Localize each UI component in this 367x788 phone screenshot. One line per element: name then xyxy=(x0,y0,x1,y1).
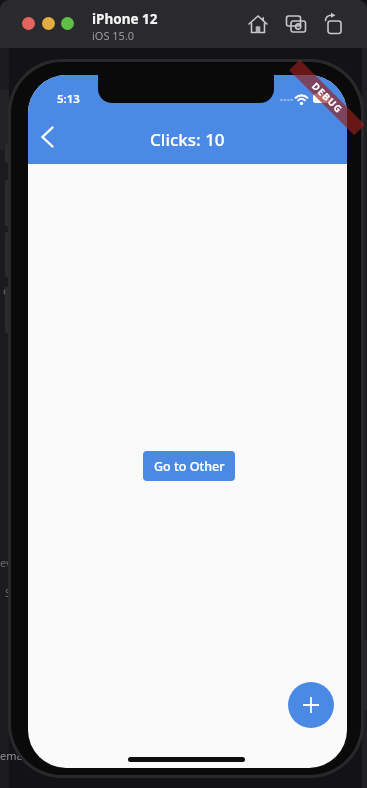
staticText: Clicks: 10 xyxy=(150,128,225,151)
staticText: iPhone 12 xyxy=(92,10,158,28)
button[interactable] xyxy=(285,14,307,36)
button[interactable] xyxy=(288,682,334,728)
staticText: em& xyxy=(0,748,25,763)
staticText: c xyxy=(3,283,9,298)
staticText: iOS 15.0 xyxy=(92,28,135,43)
button[interactable] xyxy=(42,17,55,30)
button[interactable] xyxy=(247,14,269,36)
button[interactable] xyxy=(61,17,74,30)
staticText: ev xyxy=(0,555,12,570)
staticText: S xyxy=(5,585,12,600)
button[interactable] xyxy=(22,17,35,30)
staticText: Go to Other xyxy=(154,458,225,475)
staticText: 5:13 xyxy=(57,91,80,107)
button[interactable]: Go to Other xyxy=(143,451,235,481)
button[interactable] xyxy=(323,14,345,36)
button[interactable] xyxy=(36,122,60,152)
staticText: DEBUG xyxy=(309,79,346,116)
